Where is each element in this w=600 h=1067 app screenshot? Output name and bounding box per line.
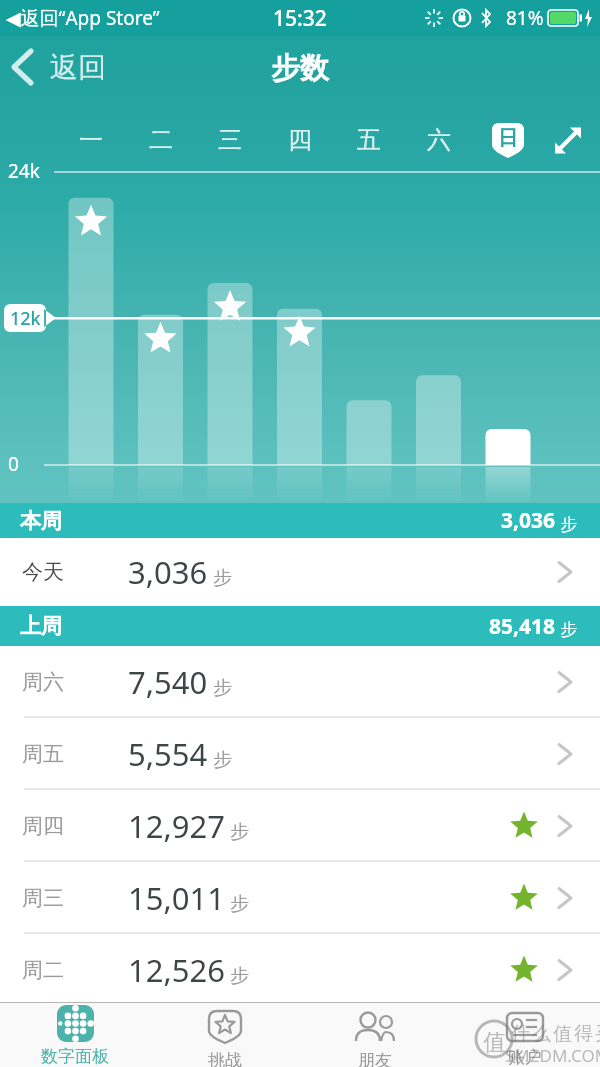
staticText: 12k [10,306,41,331]
staticText: 周五 [22,741,128,767]
staticText: 今天 [22,559,128,585]
button[interactable]: 六 [415,122,463,158]
staticText: 步 [225,890,249,916]
button[interactable]: 三 [206,122,254,158]
button[interactable]: 账户 [450,1003,600,1067]
staticText: 15:32 [273,4,327,33]
staticText: 数字面板 [41,1046,109,1067]
button[interactable]: 周二 [0,934,600,1006]
staticText: 步 [208,674,232,700]
button[interactable]: 日 [484,122,532,158]
button[interactable]: 二 [137,122,185,158]
staticText: 周三 [22,885,128,911]
staticText: 六 [427,125,451,155]
staticText: 24k [8,158,40,184]
staticText: 3,036 [501,506,556,535]
staticText: 步 [556,512,578,535]
button[interactable]: 周三 [0,862,600,934]
button[interactable]: 数字面板 [0,1003,150,1067]
button[interactable]: 周六 [0,646,600,718]
staticText: 一 [79,125,103,155]
staticText: 步数 [271,50,329,87]
button[interactable]: 今天 [0,538,600,606]
staticText: 朋友 [358,1050,392,1067]
staticText: SMZDM.COM [505,1044,600,1067]
staticText: 挑战 [208,1050,242,1067]
staticText: 什么值得买 [510,1022,600,1046]
staticText: 二 [149,125,173,155]
staticText: 15,011 [128,877,225,919]
button[interactable]: 返回 [10,48,106,86]
staticText: 周二 [22,957,128,983]
staticText: 四 [288,125,312,155]
staticText: 7,540 [128,661,208,703]
button[interactable]: 周四 [0,790,600,862]
staticText: 周四 [22,813,128,839]
staticText: 本周 [20,508,62,534]
staticText: 步 [225,818,249,844]
staticText: 返回 [50,50,106,85]
staticText: 12,927 [128,805,225,847]
staticText: 12,526 [128,949,225,991]
button[interactable] [550,122,590,158]
staticText: 0 [8,451,19,477]
button[interactable]: 一 [67,122,115,158]
staticText: ◀返回“App Store” [6,5,160,31]
staticText: 步 [225,962,249,988]
button[interactable]: 挑战 [150,1003,300,1067]
staticText: 5,554 [128,733,208,775]
staticText: 81% [506,5,544,31]
staticText: 步 [556,617,578,640]
staticText: 值 [483,1028,506,1057]
button[interactable]: 周五 [0,718,600,790]
button[interactable]: 五 [345,122,393,158]
staticText: 85,418 [489,612,556,641]
staticText: 周六 [22,669,128,695]
staticText: 步 [208,564,232,590]
staticText: 3,036 [128,551,208,593]
staticText: 账户 [508,1047,542,1067]
staticText: 步 [208,746,232,772]
button[interactable]: 朋友 [300,1003,450,1067]
staticText: 三 [218,125,242,155]
staticText: 日 [498,126,518,151]
staticText: 上周 [20,613,62,639]
staticText: 五 [357,125,381,155]
button[interactable]: 四 [276,122,324,158]
